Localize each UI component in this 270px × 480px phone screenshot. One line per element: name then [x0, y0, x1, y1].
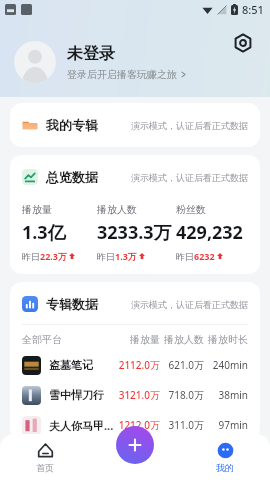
staticText: 播放时长 [204, 333, 248, 346]
button[interactable]: 总览数据 [10, 155, 260, 274]
button[interactable]: 盗墓笔记 [10, 350, 260, 380]
staticText: 240min [204, 358, 248, 372]
staticText: 97min [204, 418, 248, 432]
staticText: 登录后开启播客玩赚之旅 [67, 68, 177, 81]
staticText: 38min [204, 388, 248, 402]
staticText: 我的专辑 [46, 117, 98, 133]
staticText: 1.3亿 [22, 220, 66, 245]
staticText: 全部平台 [22, 333, 116, 346]
staticText: 昨日 [97, 251, 115, 262]
staticText: 粉丝数 [176, 203, 206, 216]
button[interactable]: 夫人你马甲... [10, 410, 260, 440]
staticText: 演示模式，认证后看正式数据 [131, 172, 248, 183]
staticText: 311.0万 [160, 418, 204, 432]
staticText: 专辑数据 [46, 296, 98, 312]
staticText: 播放量 [116, 333, 160, 346]
staticText: 首页 [36, 462, 54, 473]
staticText: 8:51 [242, 2, 264, 17]
button[interactable]: Create [116, 426, 154, 464]
button[interactable]: 雪中悍刀行 [10, 380, 260, 410]
button[interactable]: 未登录 [14, 41, 187, 83]
staticText: 夫人你马甲... [49, 418, 116, 433]
staticText: 雪中悍刀行 [49, 388, 116, 402]
staticText: 昨日 [22, 251, 40, 262]
staticText: 429,232 [176, 220, 243, 245]
staticText: 演示模式，认证后看正式数据 [131, 299, 248, 310]
staticText: 1.3万 [115, 250, 137, 262]
button[interactable]: Settings [230, 30, 256, 56]
staticText: 3233.3万 [97, 220, 172, 245]
staticText: 未登录 [67, 44, 115, 64]
staticText: 我的 [216, 462, 234, 473]
staticText: 22.3万 [40, 250, 67, 262]
staticText: 1212.0万 [116, 418, 160, 432]
staticText: 6232 [194, 250, 215, 262]
staticText: 盗墓笔记 [49, 358, 116, 372]
staticText: 621.0万 [160, 358, 204, 372]
staticText: 播放人数 [160, 333, 204, 346]
button[interactable]: 我的 [180, 434, 270, 480]
staticText: 2112.0万 [116, 358, 160, 372]
staticText: 播放量 [22, 203, 52, 216]
staticText: 播放人数 [97, 203, 137, 216]
staticText: 昨日 [176, 251, 194, 262]
staticText: 718.0万 [160, 388, 204, 402]
staticText: 总览数据 [46, 169, 98, 185]
button[interactable]: 首页 [0, 434, 90, 480]
staticText: 3121.0万 [116, 388, 160, 402]
staticText: 演示模式，认证后看正式数据 [131, 120, 248, 131]
button[interactable]: 我的专辑 [10, 103, 260, 147]
